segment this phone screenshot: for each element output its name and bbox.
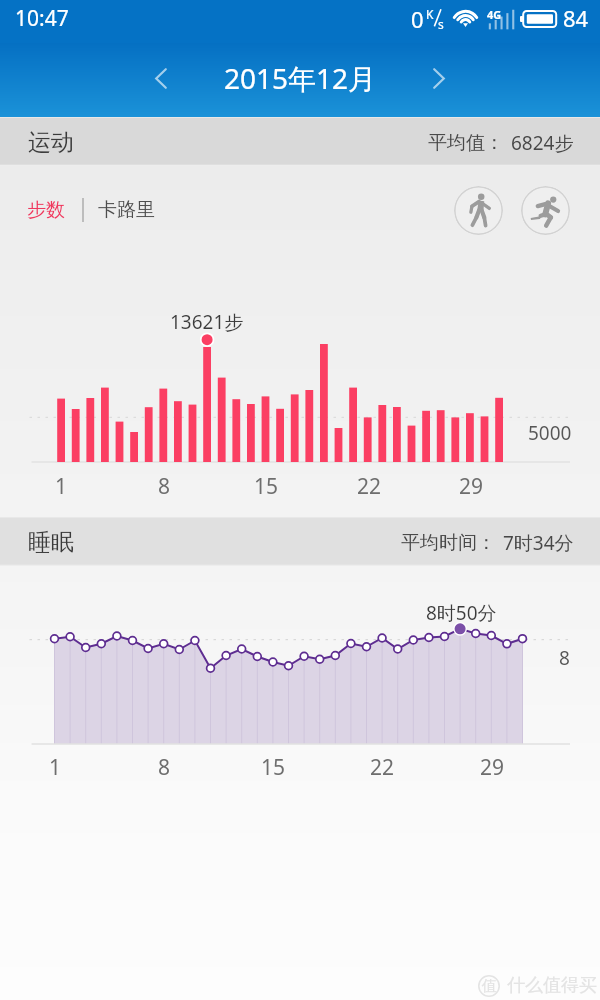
staticText: 22 <box>367 753 397 782</box>
staticText: 10:47 <box>15 4 69 33</box>
staticText: 29 <box>477 753 507 782</box>
staticText: 7时34分 <box>503 530 574 556</box>
staticText: 6824步 <box>511 130 574 156</box>
staticText: 5000 <box>528 420 572 446</box>
staticText: 22 <box>354 472 384 501</box>
staticText: 15 <box>251 472 281 501</box>
staticText: 13621步 <box>170 309 244 335</box>
staticText: 平均时间： <box>401 531 496 555</box>
staticText: 2015年12月 <box>224 59 377 97</box>
staticText: 84 <box>563 3 589 33</box>
staticText: 8 <box>149 472 179 501</box>
staticText: 卡路里 <box>98 198 155 222</box>
staticText: K <box>426 6 434 22</box>
staticText: s <box>438 16 444 32</box>
button[interactable]: 跑步 <box>521 186 570 235</box>
staticText: 睡眠 <box>28 528 74 557</box>
button[interactable]: 卡路里 <box>93 190 160 230</box>
staticText: 运动 <box>28 128 74 157</box>
staticText: 平均值： <box>428 131 504 155</box>
button[interactable]: 上个月 <box>138 55 184 101</box>
staticText: 4G <box>487 7 502 22</box>
staticText: 15 <box>258 753 288 782</box>
staticText: 8 <box>149 753 179 782</box>
staticText: 值 <box>482 977 497 996</box>
staticText: 29 <box>456 472 486 501</box>
button[interactable]: 步行 <box>454 186 503 235</box>
staticText: 8时50分 <box>426 600 497 626</box>
staticText: 1 <box>40 753 70 782</box>
staticText: 0 <box>411 4 424 34</box>
button[interactable]: 步数 <box>22 190 70 230</box>
button[interactable]: 下个月 <box>416 55 462 101</box>
staticText: 1 <box>46 472 76 501</box>
staticText: 什么值得买 <box>507 974 597 997</box>
staticText: 8 <box>559 645 570 671</box>
staticText: 步数 <box>27 198 65 222</box>
